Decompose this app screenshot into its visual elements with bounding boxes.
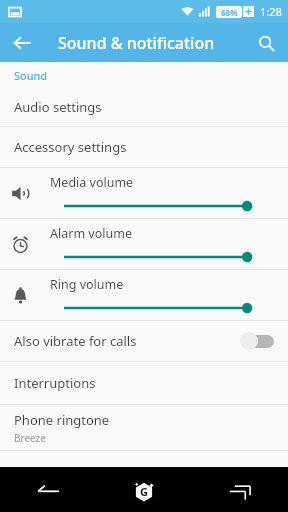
button[interactable]: Media volume [0,168,288,218]
staticText: Audio settings [14,98,102,116]
staticText: G [140,484,148,499]
button[interactable]: Accessory settings [0,127,288,167]
staticText: Interruptions [14,374,96,392]
button[interactable]: Phone ringtone [0,405,288,450]
staticText: Accessory settings [14,138,127,156]
button[interactable]: Interruptions [0,362,288,404]
staticText: 68% [221,7,238,18]
staticText: Media volume [50,174,134,191]
button[interactable]: Back [6,27,38,59]
button[interactable]: Home [96,467,192,512]
button[interactable]: Back [0,467,96,512]
staticText: 1:28 [260,4,282,19]
button[interactable]: Also vibrate for calls [0,321,288,361]
staticText: Sound & notification [58,32,215,54]
button[interactable]: Audio settings [0,88,288,126]
staticText: Sound [14,68,48,83]
button[interactable]: Ring volume [0,270,288,320]
staticText: Alarm volume [50,225,132,242]
button[interactable]: Recent apps [192,467,288,512]
staticText: Phone ringtone [14,411,110,429]
button[interactable]: Search [250,27,282,59]
staticText: Breeze [14,431,46,445]
staticText: Ring volume [50,276,124,293]
button[interactable]: Alarm volume [0,219,288,269]
staticText: Also vibrate for calls [14,332,240,350]
